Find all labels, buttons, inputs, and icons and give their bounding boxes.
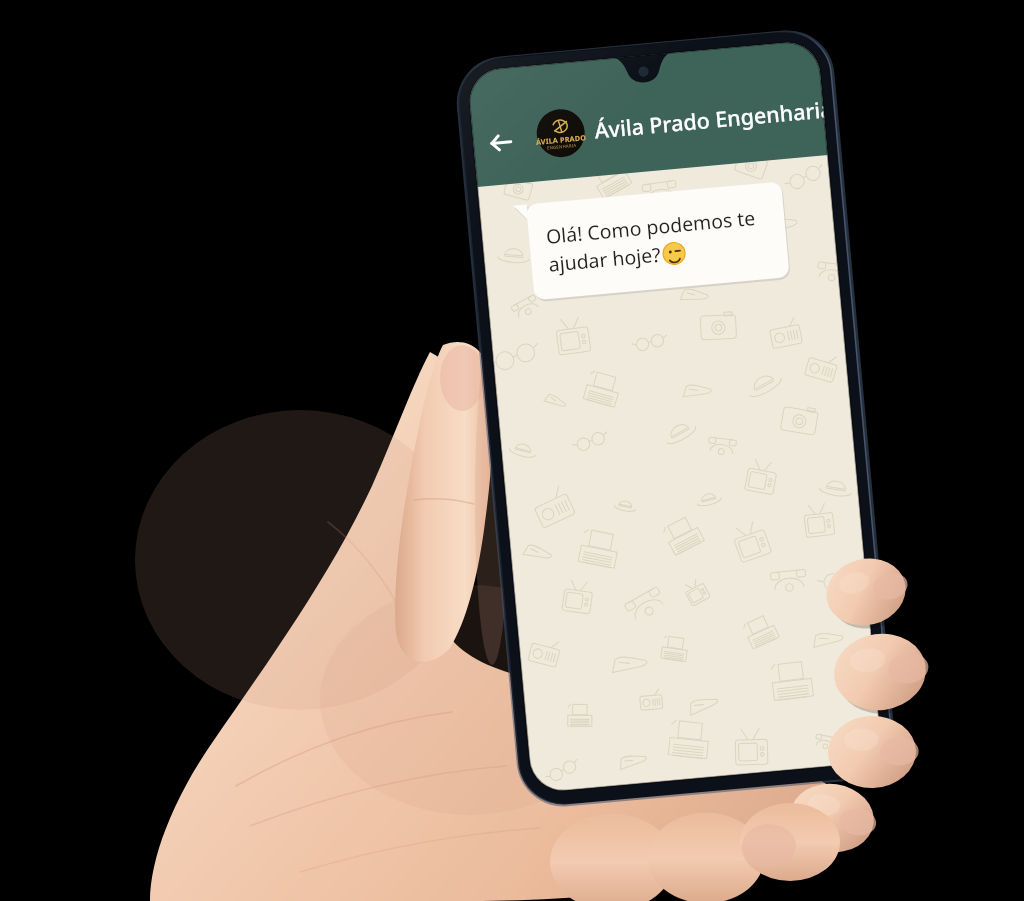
button[interactable]: Ávila Prado Engenharia WhatsApp chat on … [0, 0, 1024, 901]
